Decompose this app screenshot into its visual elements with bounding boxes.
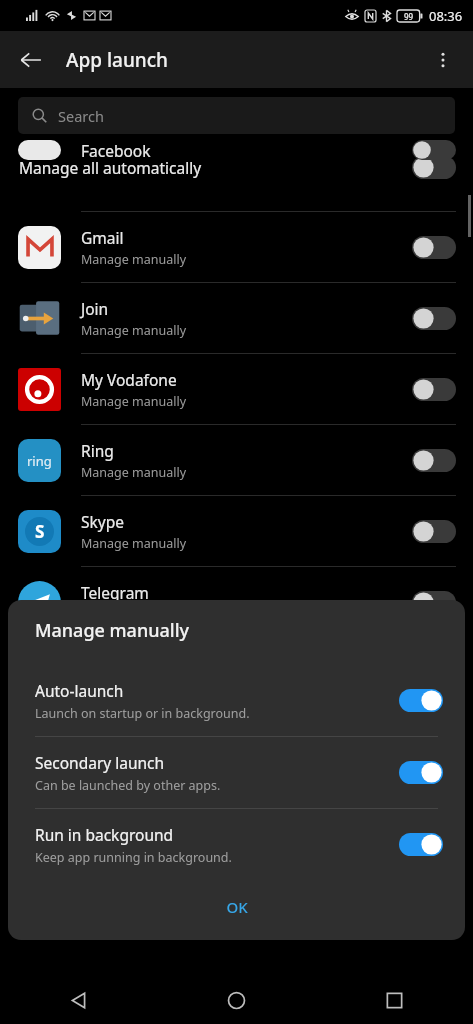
- staticText: Can be launched by other apps.: [35, 777, 221, 794]
- button[interactable]: Back: [7, 36, 55, 84]
- button[interactable]: Secondary launch: [8, 737, 465, 808]
- button[interactable]: S: [0, 496, 473, 566]
- staticText: OK: [226, 897, 248, 917]
- button[interactable]: Search: [18, 97, 455, 134]
- staticText: Launch on startup or in background.: [35, 705, 250, 722]
- button[interactable]: Amazon Kindle: [0, 638, 473, 708]
- button[interactable]: Gmail: [0, 212, 473, 282]
- staticText: Ring: [81, 440, 114, 461]
- staticText: Telegram: [81, 582, 149, 603]
- staticText: Manage manually: [81, 464, 187, 481]
- button[interactable]: Join: [0, 283, 473, 353]
- button[interactable]: Recent apps: [315, 976, 473, 1024]
- staticText: Manage manually: [81, 251, 187, 268]
- button[interactable]: OK: [8, 884, 465, 930]
- staticText: Run in background: [35, 824, 174, 845]
- button[interactable]: Run in background: [8, 809, 465, 880]
- staticText: My Vodafone: [81, 369, 177, 390]
- button[interactable]: Facebook: [0, 140, 473, 160]
- button[interactable]: More options: [419, 36, 467, 84]
- staticText: Join: [81, 298, 109, 319]
- button[interactable]: Manage all automatically: [0, 143, 473, 191]
- staticText: Manage manually: [81, 393, 187, 410]
- button[interactable]: Auto-launch: [8, 665, 465, 736]
- button[interactable]: Telegram: [0, 567, 473, 637]
- button[interactable]: Back: [0, 976, 157, 1024]
- button[interactable]: Home: [157, 976, 315, 1024]
- staticText: ring: [27, 452, 52, 470]
- staticText: Skype: [81, 511, 124, 532]
- staticText: Facebook: [81, 140, 151, 160]
- staticText: Manage manually: [81, 677, 187, 694]
- staticText: Manage manually: [81, 322, 187, 339]
- staticText: Keep app running in background.: [35, 849, 232, 866]
- button[interactable]: My Vodafone: [0, 354, 473, 424]
- staticText: Manage manually: [35, 618, 190, 643]
- staticText: Manage all automatically: [19, 157, 412, 178]
- staticText: S: [35, 520, 45, 543]
- staticText: Gmail: [81, 227, 124, 248]
- staticText: 08:36: [429, 7, 463, 25]
- staticText: Manage manually: [81, 535, 187, 552]
- staticText: 99: [404, 11, 414, 22]
- staticText: Search: [58, 106, 104, 126]
- staticText: Secondary launch: [35, 752, 165, 773]
- button[interactable]: ring: [0, 425, 473, 495]
- staticText: Auto-launch: [35, 680, 124, 701]
- staticText: App launch: [66, 47, 169, 73]
